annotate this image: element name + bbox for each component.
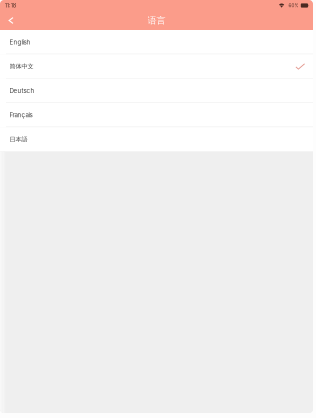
staticText: 11:18 (5, 2, 16, 9)
button[interactable]: Deutsch (0, 79, 313, 103)
staticText: Français (9, 111, 32, 119)
button[interactable]: 日本語 (0, 127, 313, 151)
button[interactable]: 简体中文 (0, 54, 313, 79)
button[interactable]: Français (0, 103, 313, 127)
button[interactable]: Back (0, 11, 22, 30)
staticText: 简体中文 (9, 63, 33, 70)
staticText: 语言 (147, 15, 165, 26)
staticText: 日本語 (9, 135, 27, 143)
button[interactable]: English (0, 30, 313, 54)
staticText: Deutsch (9, 87, 34, 94)
staticText: English (9, 38, 30, 46)
staticText: 60% (288, 3, 298, 8)
